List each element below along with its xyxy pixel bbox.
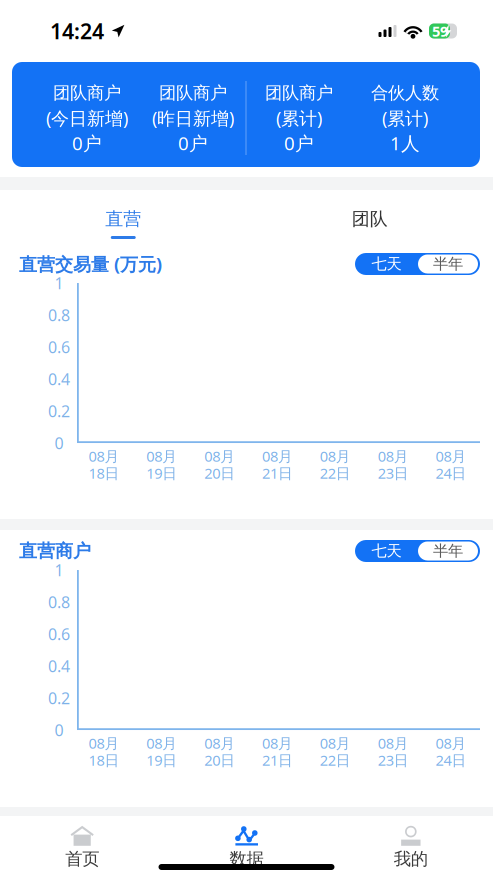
button[interactable]: 半年 xyxy=(418,254,478,273)
staticText: 24日 xyxy=(436,750,467,770)
staticText: 直营商户 xyxy=(19,540,91,562)
staticText: 半年 xyxy=(433,541,463,561)
staticText: (累计) xyxy=(382,106,428,130)
staticText: 0.8 xyxy=(48,304,70,326)
button[interactable]: 七天 xyxy=(355,253,418,275)
staticText: 团队商户 xyxy=(265,82,333,104)
staticText: 数据 xyxy=(229,848,263,870)
staticText: 08月 xyxy=(146,446,177,466)
button[interactable]: 团队 xyxy=(246,208,493,243)
staticText: 08月 xyxy=(204,446,235,466)
staticText: 08月 xyxy=(146,733,177,753)
staticText: 08月 xyxy=(436,733,467,753)
staticText: 20日 xyxy=(204,463,235,483)
button[interactable]: 首页 xyxy=(0,825,164,873)
staticText: 59 xyxy=(432,21,448,41)
staticText: 0.6 xyxy=(48,623,70,645)
button[interactable]: 半年 xyxy=(418,541,478,560)
button[interactable]: 数据 xyxy=(164,825,329,873)
staticText: 20日 xyxy=(204,750,235,770)
staticText: 08月 xyxy=(262,446,293,466)
staticText: 0户 xyxy=(284,130,314,156)
staticText: 团队商户 xyxy=(159,82,227,104)
staticText: 18日 xyxy=(88,750,119,770)
staticText: 0.6 xyxy=(48,336,70,358)
staticText: 0.8 xyxy=(48,591,70,613)
staticText: 0.4 xyxy=(48,368,70,390)
staticText: 七天 xyxy=(371,541,401,561)
staticText: 合伙人数 xyxy=(371,82,439,104)
staticText: 0.4 xyxy=(48,655,70,677)
staticText: 团队商户 xyxy=(53,82,121,104)
staticText: 08月 xyxy=(320,733,351,753)
staticText: 18日 xyxy=(88,463,119,483)
staticText: (累计) xyxy=(276,106,322,130)
staticText: 团队 xyxy=(352,208,388,230)
staticText: 我的 xyxy=(394,848,428,870)
staticText: 08月 xyxy=(320,446,351,466)
staticText: 23日 xyxy=(378,463,409,483)
staticText: 08月 xyxy=(88,733,119,753)
button[interactable]: 七天 xyxy=(355,540,418,562)
staticText: 0户 xyxy=(72,130,102,156)
staticText: 0.2 xyxy=(48,400,70,422)
staticText: 0.2 xyxy=(48,687,70,709)
staticText: 0 xyxy=(54,432,63,454)
staticText: 14:24 xyxy=(50,16,104,46)
staticText: 21日 xyxy=(262,463,293,483)
staticText: 23日 xyxy=(378,750,409,770)
staticText: 1 xyxy=(54,272,63,294)
staticText: (今日新增) xyxy=(46,106,128,130)
staticText: 19日 xyxy=(146,463,177,483)
staticText: 19日 xyxy=(146,750,177,770)
staticText: 08月 xyxy=(378,446,409,466)
staticText: 首页 xyxy=(65,848,99,870)
staticText: 直营 xyxy=(105,208,141,230)
staticText: 21日 xyxy=(262,750,293,770)
staticText: 0户 xyxy=(178,130,208,156)
staticText: (昨日新增) xyxy=(152,106,234,130)
button[interactable]: 我的 xyxy=(329,825,493,873)
staticText: 08月 xyxy=(88,446,119,466)
staticText: 半年 xyxy=(433,254,463,274)
staticText: 08月 xyxy=(204,733,235,753)
staticText: 08月 xyxy=(436,446,467,466)
staticText: 24日 xyxy=(436,463,467,483)
staticText: 1人 xyxy=(390,130,420,156)
staticText: 08月 xyxy=(378,733,409,753)
staticText: 08月 xyxy=(262,733,293,753)
button[interactable]: 直营 xyxy=(0,208,246,243)
staticText: 22日 xyxy=(320,750,351,770)
staticText: 0 xyxy=(54,719,63,741)
staticText: 直营交易量 (万元) xyxy=(19,252,162,276)
staticText: 1 xyxy=(54,559,63,581)
staticText: 22日 xyxy=(320,463,351,483)
staticText: 七天 xyxy=(371,254,401,274)
